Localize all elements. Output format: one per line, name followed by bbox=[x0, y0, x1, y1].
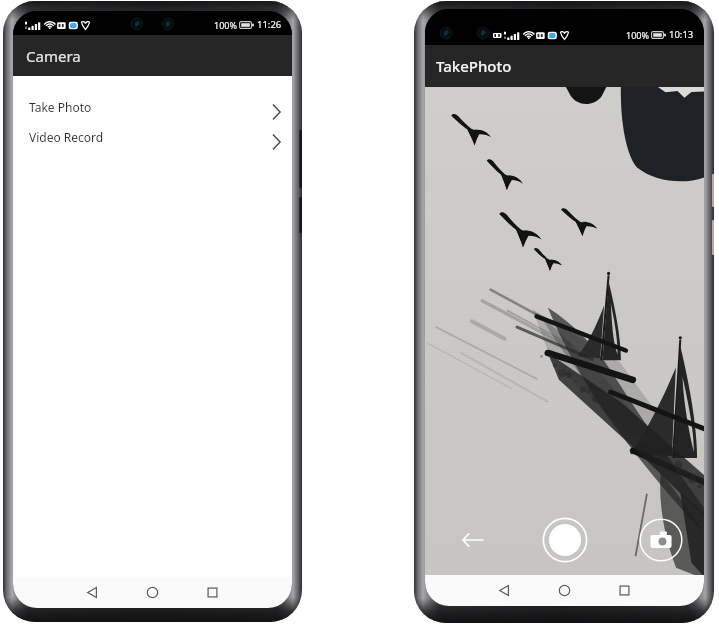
staticText: Camera bbox=[26, 46, 81, 66]
button[interactable]: Take photo bbox=[542, 517, 588, 563]
button[interactable]: Recents bbox=[610, 575, 639, 606]
button[interactable]: Back bbox=[490, 575, 519, 606]
staticText: 100% bbox=[626, 29, 649, 41]
staticText: Video Record bbox=[29, 129, 104, 145]
staticText: 100% bbox=[214, 19, 237, 31]
button[interactable]: Recents bbox=[198, 577, 227, 608]
button[interactable]: Back bbox=[78, 577, 107, 608]
button[interactable]: Home bbox=[138, 577, 167, 608]
staticText: Take Photo bbox=[29, 99, 92, 115]
button[interactable]: Take Photo bbox=[13, 96, 292, 118]
staticText: 10:13 bbox=[669, 28, 694, 41]
button[interactable]: Switch camera bbox=[639, 518, 683, 562]
staticText: 11:26 bbox=[257, 18, 282, 31]
button[interactable]: Back bbox=[455, 522, 491, 558]
button[interactable]: Home bbox=[550, 575, 579, 606]
staticText: TakePhoto bbox=[436, 56, 512, 76]
button[interactable]: Video Record bbox=[13, 126, 292, 148]
